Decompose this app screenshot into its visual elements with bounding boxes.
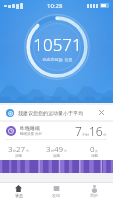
- staticText: 0: [90, 143, 95, 154]
- staticText: 27: [16, 143, 26, 154]
- staticText: 时: [13, 149, 16, 153]
- staticText: 3: [8, 143, 13, 154]
- staticText: 10571: [33, 33, 82, 56]
- button[interactable]: 我的: [75, 183, 113, 200]
- staticText: 我建议您您的运动量小于平均: [18, 110, 96, 116]
- staticText: 时: [51, 149, 54, 153]
- staticText: 小时: [82, 133, 89, 137]
- staticText: 昨晚睡眠: [20, 125, 40, 131]
- button[interactable]: 状态: [0, 183, 37, 200]
- button[interactable]: 昨晚睡眠: [0, 122, 113, 173]
- staticText: 已走完目标 公里: [42, 57, 73, 62]
- button[interactable]: 发现: [37, 183, 75, 200]
- staticText: 浅睡: [53, 154, 60, 158]
- staticText: 分: [26, 149, 29, 153]
- button[interactable]: 我建议您您的运动量小于平均: [0, 105, 113, 120]
- staticText: 我的: [90, 193, 98, 198]
- button[interactable]: 10571: [24, 14, 90, 80]
- staticText: 7: [75, 123, 82, 139]
- staticText: 3: [46, 143, 51, 154]
- button[interactable]: 3: [0, 143, 37, 158]
- staticText: 状态: [15, 193, 23, 198]
- staticText: 清醒: [91, 154, 98, 158]
- staticText: 16: [89, 123, 103, 139]
- staticText: 分: [64, 149, 67, 153]
- button[interactable]: 0: [75, 143, 113, 158]
- staticText: 睡眠质量 良好: [20, 131, 42, 136]
- staticText: 发现: [52, 193, 60, 198]
- staticText: 次: [95, 149, 98, 153]
- button[interactable]: Close: [96, 107, 107, 118]
- button[interactable]: 3: [37, 143, 75, 158]
- staticText: 49: [54, 143, 64, 154]
- staticText: 深睡: [15, 154, 22, 158]
- staticText: 10:28: [47, 2, 63, 10]
- staticText: 分: [103, 133, 107, 137]
